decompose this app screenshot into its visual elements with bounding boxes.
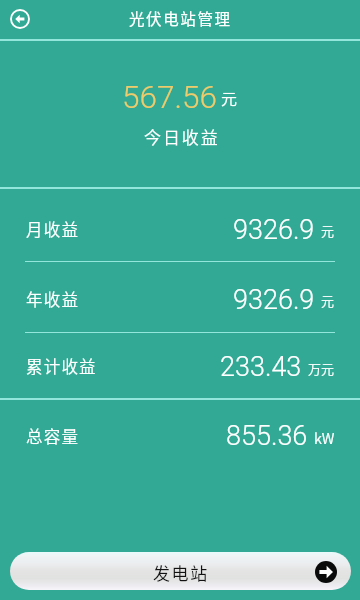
button[interactable]: 月收益 <box>0 204 360 256</box>
button[interactable]: 累计收益 <box>0 341 360 393</box>
staticText: 年收益 <box>26 287 80 311</box>
staticText: 月收益 <box>26 217 80 241</box>
staticText: 元 <box>321 291 335 310</box>
staticText: 855.36 <box>226 420 308 452</box>
button[interactable]: 发电站 <box>10 552 351 590</box>
button[interactable]: 年收益 <box>0 274 360 326</box>
staticText: 光伏电站管理 <box>129 7 232 29</box>
staticText: 总容量 <box>26 424 80 448</box>
staticText: 万元 <box>308 359 335 378</box>
staticText: 9326.9 <box>233 284 315 316</box>
button[interactable]: 总容量 <box>0 410 360 462</box>
staticText: 累计收益 <box>26 354 97 378</box>
staticText: 9326.9 <box>233 214 315 246</box>
staticText: 567.56 <box>122 79 217 116</box>
staticText: 233.43 <box>220 351 302 383</box>
staticText: kW <box>314 427 335 448</box>
staticText: 元 <box>321 221 335 240</box>
staticText: 今日收益 <box>144 124 220 149</box>
staticText: 元 <box>221 86 238 109</box>
staticText: 发电站 <box>153 560 209 585</box>
button[interactable]: Back <box>5 4 35 34</box>
